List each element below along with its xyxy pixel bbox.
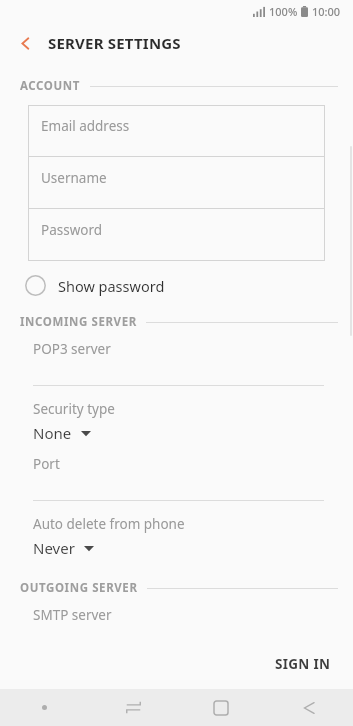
button[interactable]: POP3 server [33,340,324,386]
staticText: Show password [58,276,165,296]
staticText: POP3 server [33,340,111,358]
button[interactable]: Back [265,689,353,726]
staticText: Never [33,538,75,558]
staticText: OUTGOING SERVER [20,580,138,596]
staticText: SERVER SETTINGS [48,33,181,53]
staticText: ACCOUNT [20,78,81,94]
staticText: SMTP server [33,606,112,624]
button[interactable]: SIGN IN [269,649,337,679]
staticText: Username [41,169,107,187]
button[interactable]: Show password [25,275,333,296]
staticText: 100% [269,4,298,19]
staticText: Password [41,221,103,239]
button[interactable]: Auto delete from phone [33,515,324,558]
staticText: Auto delete from phone [33,515,185,533]
button[interactable]: Hide keyboard [89,689,177,726]
button[interactable]: Security type [33,400,324,443]
button[interactable]: Email address [28,105,325,157]
button[interactable]: Username [28,157,325,209]
staticText: Email address [41,117,130,135]
button[interactable]: Port [33,455,324,501]
button[interactable]: Back [10,28,40,58]
staticText: SIGN IN [275,655,331,673]
staticText: Security type [33,400,115,418]
staticText: INCOMING SERVER [20,314,137,330]
button[interactable]: Password [28,209,325,261]
staticText: Port [33,455,60,473]
button[interactable]: Recent apps [177,689,265,726]
staticText: 10:00 [312,4,341,19]
staticText: None [33,423,72,443]
